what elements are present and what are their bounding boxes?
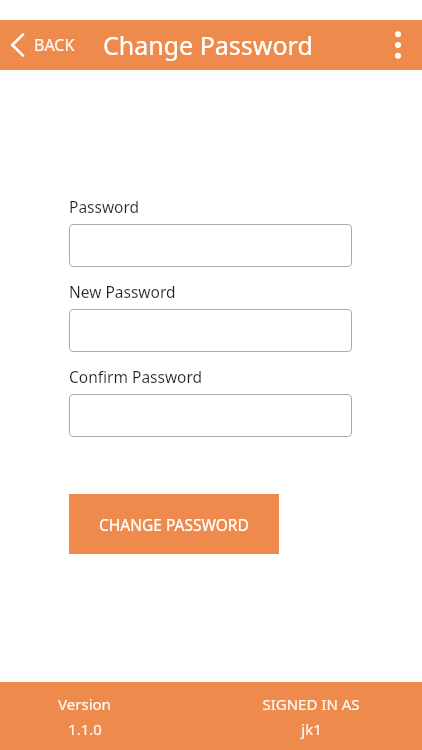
staticText: CHANGE PASSWORD <box>99 514 249 535</box>
button[interactable]: SIGNED IN AS <box>211 682 422 750</box>
button[interactable]: CHANGE PASSWORD <box>69 494 279 554</box>
button[interactable] <box>69 224 352 267</box>
staticText: New Password <box>69 281 176 302</box>
button[interactable] <box>69 309 352 352</box>
button[interactable]: More options <box>374 20 422 70</box>
staticText: Confirm Password <box>69 366 203 387</box>
staticText: BACK <box>34 34 75 56</box>
button[interactable] <box>69 394 352 437</box>
button[interactable]: Version <box>0 682 211 750</box>
staticText: 1.1.0 <box>68 719 102 739</box>
staticText: SIGNED IN AS <box>262 694 360 714</box>
staticText: Change Password <box>103 28 313 62</box>
staticText: Password <box>69 196 140 217</box>
staticText: Version <box>58 694 111 714</box>
staticText: jk1 <box>301 719 322 739</box>
button[interactable]: BACK <box>0 20 101 70</box>
